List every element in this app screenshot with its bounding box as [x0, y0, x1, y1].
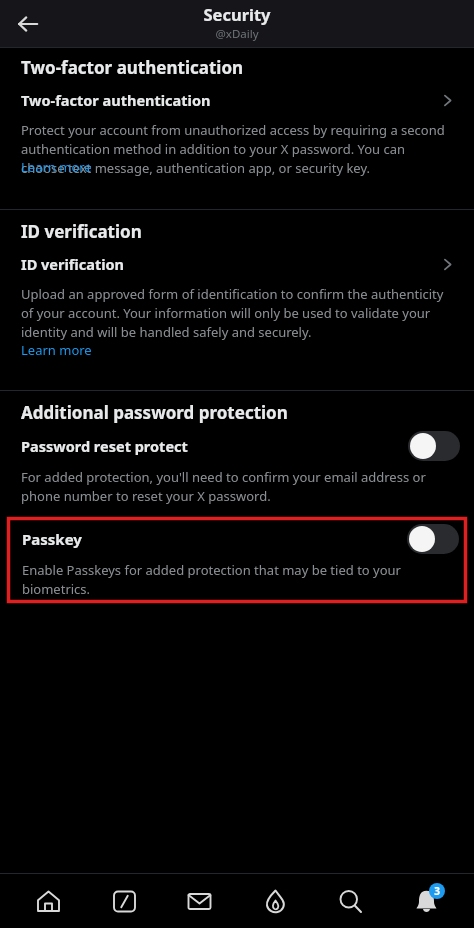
staticText: Passkey: [22, 529, 82, 549]
button[interactable]: Grok: [97, 874, 151, 928]
staticText: Security: [203, 3, 271, 25]
staticText: Two-factor authentication: [21, 90, 211, 110]
button[interactable]: Learn more: [21, 158, 92, 176]
staticText: ID verification: [21, 254, 124, 274]
staticText: Additional password protection: [21, 401, 288, 424]
button[interactable]: Search: [323, 874, 377, 928]
staticText: Protect your account from unauthorized a…: [21, 121, 452, 177]
button[interactable]: Password reset protect: [0, 424, 474, 468]
button[interactable]: Trending: [248, 874, 302, 928]
button[interactable]: Two-factor authentication: [0, 79, 474, 121]
staticText: Enable Passkeys for added protection tha…: [22, 561, 401, 598]
button[interactable]: Toggle: [408, 431, 460, 461]
button[interactable]: Toggle: [407, 524, 459, 554]
button[interactable]: Notifications: [399, 874, 453, 928]
staticText: For added protection, you'll need to con…: [21, 468, 452, 505]
button[interactable]: Back: [6, 2, 50, 46]
staticText: Upload an approved form of identificatio…: [21, 285, 452, 360]
button[interactable]: Home: [21, 874, 75, 928]
staticText: @xDaily: [215, 26, 259, 42]
button[interactable]: Messages: [172, 874, 226, 928]
staticText: Two-factor authentication: [21, 56, 244, 79]
staticText: Password reset protect: [21, 436, 188, 456]
staticText: 3: [434, 884, 440, 898]
button[interactable]: Learn more: [21, 341, 92, 359]
button[interactable]: ID verification: [0, 243, 474, 285]
staticText: ID verification: [21, 220, 142, 243]
